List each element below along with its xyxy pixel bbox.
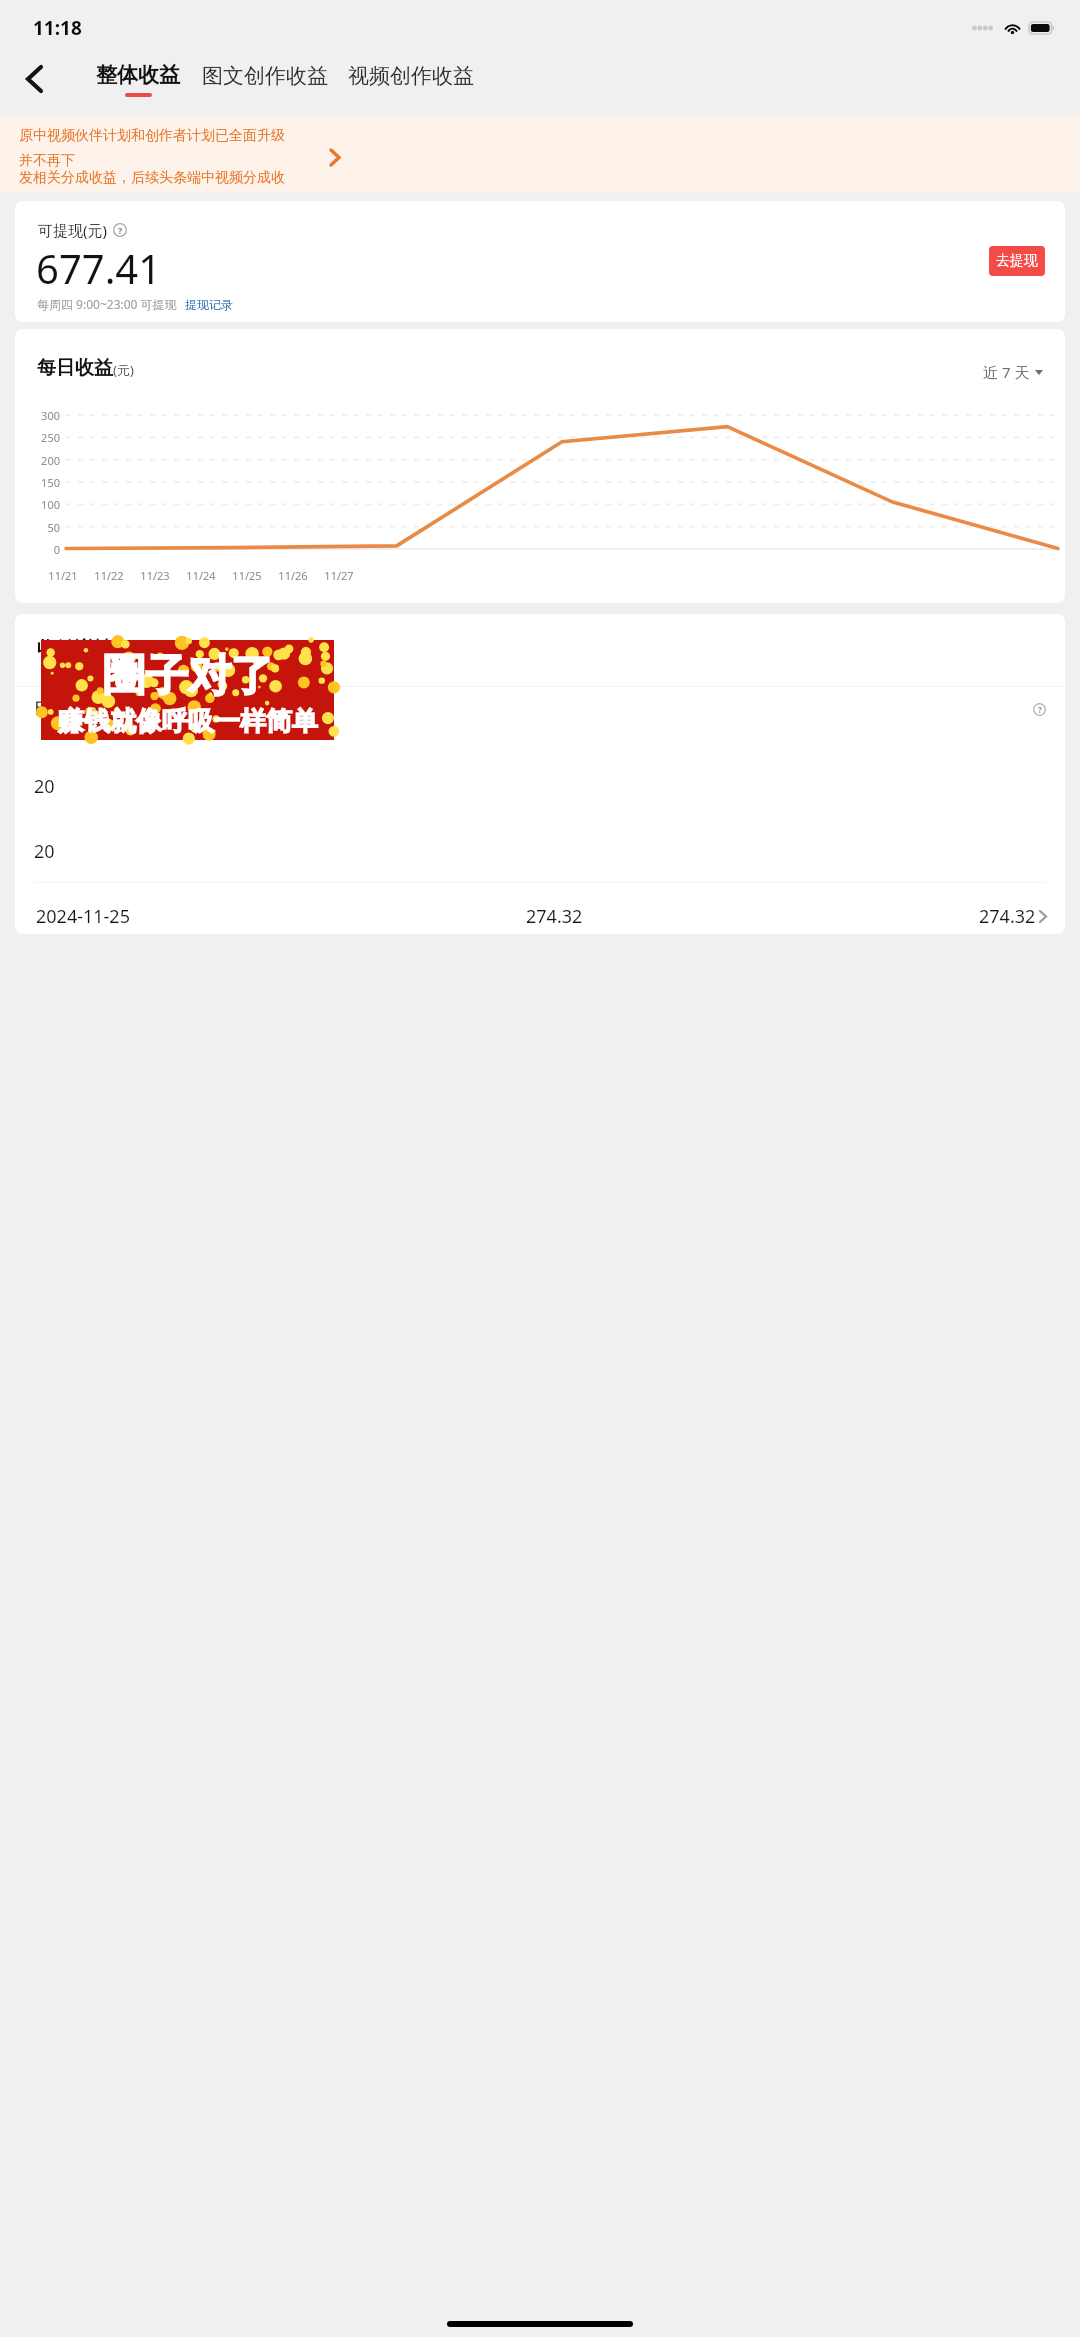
button[interactable]: Back	[10, 55, 58, 103]
staticText: ?	[118, 224, 123, 236]
staticText: 11/25	[232, 568, 262, 583]
staticText: 每日收益	[37, 356, 113, 380]
staticText: 300	[41, 408, 60, 423]
staticText: 视频创作收益	[348, 63, 474, 89]
staticText: 2024-11-25	[36, 904, 130, 929]
button[interactable]: 圈子对了	[41, 640, 334, 740]
staticText: 发相关分成收益，后续头条端中视频分成收益相关规	[19, 169, 293, 192]
staticText: 11/27	[324, 568, 354, 583]
staticText: 图文创作收益	[202, 63, 328, 89]
staticText: 日期	[34, 700, 62, 718]
staticText: 100	[41, 497, 60, 512]
staticText: 可提现(元)	[38, 220, 108, 240]
button[interactable]: 20	[34, 764, 1046, 808]
staticText: 150	[41, 475, 60, 490]
staticText: 11/24	[186, 568, 216, 583]
staticText: 11/26	[278, 568, 308, 583]
button[interactable]: 20	[34, 829, 1046, 873]
button[interactable]: 图文创作收益	[202, 67, 328, 93]
staticText: (元)	[113, 361, 134, 379]
staticText: 11/21	[48, 568, 78, 583]
button[interactable]: 原中视频伙伴计划和创作者计划已全面升级并不再下	[0, 115, 1080, 192]
staticText: 整体收益	[96, 62, 180, 88]
staticText: 20	[34, 774, 55, 799]
staticText: 圈子对了	[102, 649, 274, 703]
staticText: 274.32	[979, 904, 1036, 929]
staticText: ?	[1038, 704, 1042, 715]
button[interactable]: 整体收益	[96, 62, 180, 97]
staticText: 11:18	[33, 15, 82, 41]
staticText: 50	[47, 520, 60, 535]
staticText: 250	[41, 430, 60, 445]
button[interactable]: 去提现	[989, 246, 1045, 276]
staticText: 近 7 天	[983, 362, 1030, 382]
staticText: 11/23	[140, 568, 170, 583]
staticText: 提现记录	[185, 297, 233, 312]
button[interactable]: 视频创作收益	[348, 67, 474, 93]
staticText: 200	[41, 453, 60, 468]
staticText: 11/22	[94, 568, 124, 583]
button[interactable]: 2024-11-25	[36, 898, 1046, 934]
staticText: 每周四 9:00~23:00 可提现	[37, 296, 177, 312]
staticText: 20	[34, 839, 55, 864]
staticText: 677.41	[36, 241, 162, 295]
button[interactable]: 近 7 天	[983, 360, 1043, 380]
staticText: 274.32	[526, 904, 583, 929]
staticText: 最晚 23:59 前更新	[122, 641, 236, 660]
staticText: 去提现	[996, 252, 1038, 270]
button[interactable]: 提现记录	[185, 297, 233, 312]
button[interactable]: 说明	[113, 223, 127, 237]
staticText: 收益详情	[37, 637, 113, 661]
button[interactable]: 说明	[1033, 703, 1046, 716]
staticText: 赚钱就像呼吸一样简单	[58, 705, 318, 738]
staticText: 原中视频伙伴计划和创作者计划已全面升级并不再下	[19, 127, 293, 169]
staticText: 0	[53, 542, 60, 557]
